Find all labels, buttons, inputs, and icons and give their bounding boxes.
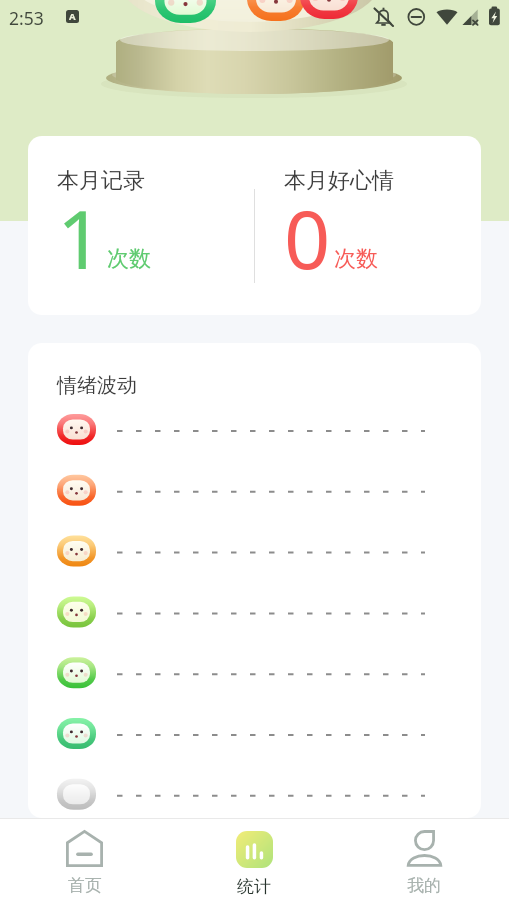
staticText: 0 — [284, 182, 331, 292]
staticText: A — [69, 10, 76, 23]
staticText: 次数 — [334, 245, 378, 273]
button[interactable]: Home — [0, 819, 169, 906]
staticText: 统计 — [237, 876, 271, 897]
staticText: 本月好心情 — [284, 167, 394, 195]
staticText: 次数 — [107, 245, 151, 273]
button[interactable]: Profile — [339, 819, 509, 906]
staticText: 本月记录 — [57, 167, 145, 195]
staticText: 首页 — [68, 875, 102, 896]
staticText: 我的 — [407, 875, 441, 896]
staticText: 1 — [57, 182, 104, 292]
staticText: 情绪波动 — [57, 373, 137, 398]
staticText: 2:53 — [9, 6, 44, 30]
button[interactable]: 统计 — [169, 819, 339, 906]
